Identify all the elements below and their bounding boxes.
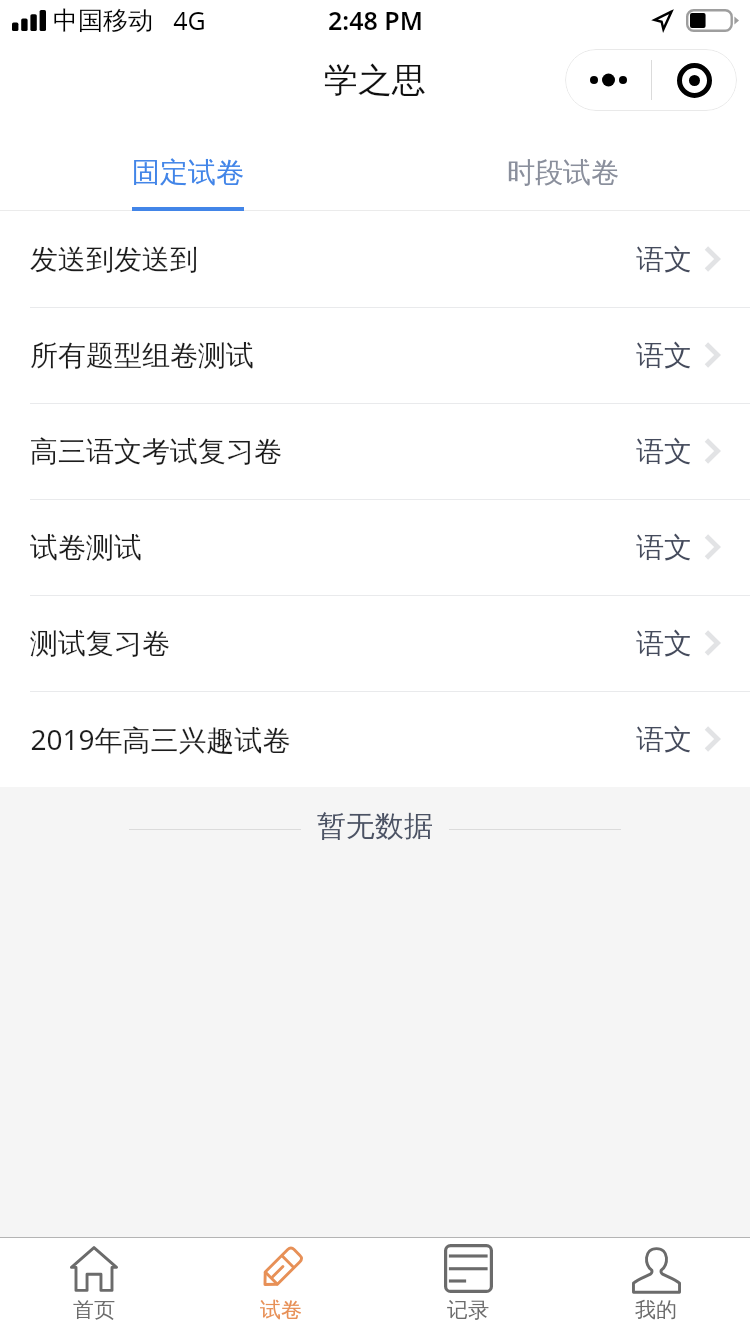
staticText: 我的 — [635, 1297, 677, 1323]
button[interactable]: 测试复习卷 — [0, 595, 750, 691]
staticText: 所有题型组卷测试 — [30, 338, 254, 373]
button[interactable]: More options — [565, 49, 651, 111]
staticText: 记录 — [447, 1297, 489, 1323]
staticText: 试卷测试 — [30, 530, 142, 565]
button[interactable]: Close mini program — [651, 49, 737, 111]
button[interactable]: Records — [374, 1238, 562, 1334]
staticText: 中国移动 — [53, 5, 153, 36]
staticText: 语文 — [636, 626, 692, 661]
button[interactable]: 高三语文考试复习卷 — [0, 403, 750, 499]
staticText: 语文 — [636, 338, 692, 373]
button[interactable]: 发送到发送到 — [0, 211, 750, 307]
staticText: 4G — [173, 3, 206, 37]
staticText: 时段试卷 — [507, 155, 619, 190]
button[interactable]: 固定试卷 — [0, 125, 375, 211]
staticText: 发送到发送到 — [30, 242, 198, 277]
staticText: 2:48 PM — [328, 3, 423, 37]
staticText: 测试复习卷 — [30, 626, 170, 661]
button[interactable]: 2019年高三兴趣试卷 — [0, 691, 750, 787]
staticText: 试卷 — [260, 1297, 302, 1323]
button[interactable]: 时段试卷 — [375, 125, 750, 211]
staticText: 首页 — [73, 1297, 115, 1323]
button[interactable]: Papers — [187, 1238, 374, 1334]
button[interactable]: Home — [0, 1238, 187, 1334]
staticText: 高三语文考试复习卷 — [30, 434, 282, 469]
button[interactable]: 试卷测试 — [0, 499, 750, 595]
staticText: 2019年高三兴趣试卷 — [30, 720, 291, 758]
button[interactable]: 所有题型组卷测试 — [0, 307, 750, 403]
staticText: 暂无数据 — [317, 808, 433, 845]
staticText: 学之思 — [324, 59, 426, 102]
button[interactable]: Profile — [562, 1238, 750, 1334]
staticText: 语文 — [636, 242, 692, 277]
staticText: 语文 — [636, 722, 692, 757]
staticText: 固定试卷 — [132, 155, 244, 190]
staticText: 语文 — [636, 530, 692, 565]
staticText: 语文 — [636, 434, 692, 469]
